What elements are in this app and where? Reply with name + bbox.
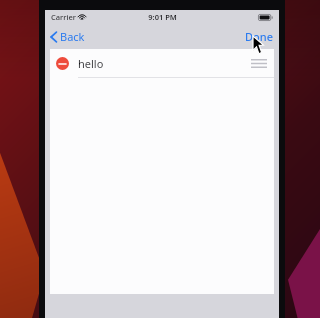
staticText: Done	[245, 29, 273, 44]
button[interactable]: Reorder	[250, 56, 268, 70]
staticText: 9:01 PM	[148, 12, 177, 22]
staticText: Back	[60, 29, 85, 44]
button[interactable]: Delete	[56, 57, 69, 70]
button[interactable]: Done	[237, 25, 279, 48]
button[interactable]: Back	[45, 25, 93, 48]
staticText: Carrier	[51, 12, 76, 22]
staticText: hello	[78, 56, 104, 71]
button[interactable]: Delete	[50, 49, 274, 77]
